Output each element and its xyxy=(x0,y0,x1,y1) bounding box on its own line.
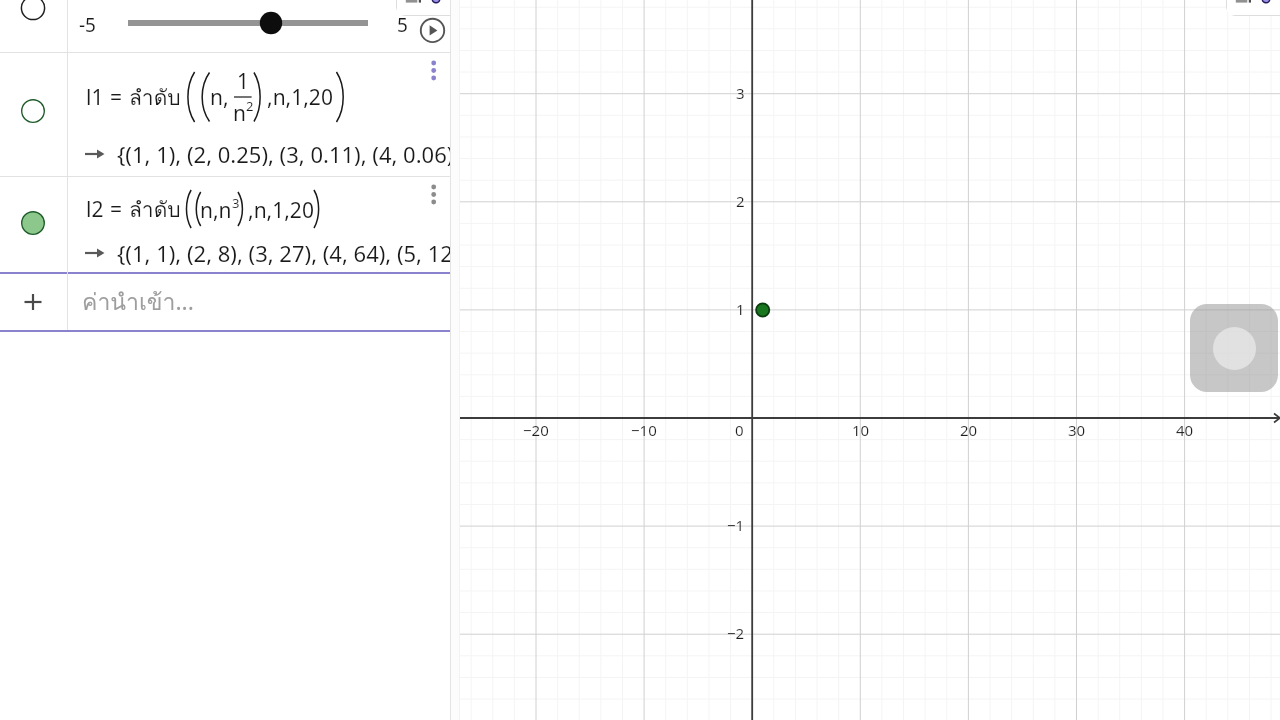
staticText: n xyxy=(233,99,246,128)
staticText: −2 xyxy=(727,623,745,643)
staticText: {(1, 1), (2, 8), (3, 27), (4, 64), (5, 1… xyxy=(117,238,450,268)
button[interactable]: Undo and redo xyxy=(396,0,450,16)
staticText: n, xyxy=(210,83,229,112)
staticText: 5 xyxy=(397,12,408,38)
staticText: 0 xyxy=(735,420,744,440)
staticText: -5 xyxy=(79,12,96,38)
staticText: = xyxy=(110,195,123,224)
staticText: 40 xyxy=(1176,420,1194,440)
staticText: 2 xyxy=(736,191,745,211)
button[interactable]: l1 xyxy=(0,53,450,176)
staticText: 3 xyxy=(736,83,745,103)
staticText: 2 xyxy=(246,97,254,115)
staticText: 10 xyxy=(852,420,870,440)
button[interactable]: Pan and zoom xyxy=(1190,304,1278,392)
button[interactable]: ค่านำเข้า... xyxy=(0,274,450,330)
staticText: l2 xyxy=(86,195,104,224)
button[interactable]: l2 xyxy=(0,177,450,272)
button[interactable]: Undo and redo xyxy=(1226,0,1280,16)
button[interactable]: More options xyxy=(424,53,444,81)
staticText: ,n,1,20 xyxy=(267,83,333,112)
staticText: 1 xyxy=(736,299,745,319)
staticText: {(1, 1), (2, 0.25), (3, 0.11), (4, 0.06) xyxy=(117,139,450,169)
staticText: ,n,1,20 xyxy=(248,196,314,225)
button[interactable]: -5 xyxy=(0,0,450,52)
staticText: 30 xyxy=(1068,420,1086,440)
button[interactable]: More options xyxy=(424,177,444,205)
staticText: −10 xyxy=(631,420,657,440)
staticText: n,n xyxy=(200,196,232,225)
staticText: 20 xyxy=(960,420,978,440)
staticText: −1 xyxy=(727,515,745,535)
staticText: −20 xyxy=(523,420,549,440)
staticText: ค่านำเข้า... xyxy=(82,284,194,321)
staticText: 1 xyxy=(237,67,250,96)
staticText: ลำดับ xyxy=(129,193,181,226)
staticText: ลำดับ xyxy=(129,81,181,114)
staticText: = xyxy=(110,83,123,112)
staticText: l1 xyxy=(86,83,104,112)
staticText: 3 xyxy=(232,194,240,212)
